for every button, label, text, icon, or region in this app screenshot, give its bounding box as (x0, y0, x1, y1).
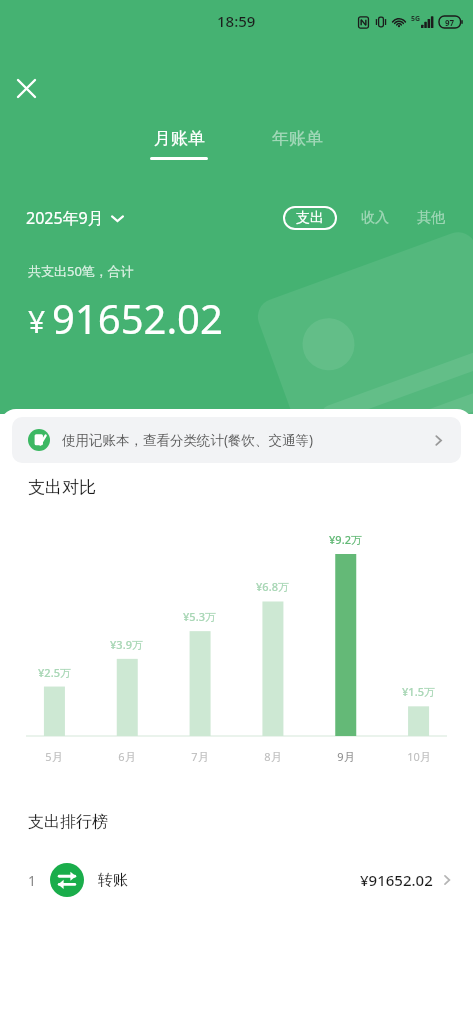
staticText: 支出对比 (28, 477, 96, 498)
staticText: 使用记账本，查看分类统计(餐饮、交通等) (62, 431, 314, 449)
staticText: 10月 (407, 749, 431, 764)
staticText: 共支出50笔，合计 (28, 262, 134, 280)
staticText: 5G (411, 14, 421, 24)
staticText: ¥91652.02 (360, 870, 433, 890)
staticText: 月账单 (154, 128, 205, 149)
staticText: 91652.02 (52, 291, 223, 345)
button[interactable]: 其他 (415, 205, 447, 231)
staticText: ¥ (28, 301, 46, 342)
button[interactable]: 支出 (283, 206, 337, 230)
staticText: 6月 (118, 749, 136, 764)
staticText: 支出 (296, 209, 324, 227)
staticText: ¥1.5万 (402, 684, 435, 699)
button[interactable]: Close (8, 70, 44, 106)
staticText: 5月 (45, 749, 63, 764)
staticText: 2025年9月 (26, 207, 104, 229)
button[interactable]: 使用记账本，查看分类统计(餐饮、交通等) (12, 417, 461, 463)
staticText: 97 (445, 17, 455, 28)
staticText: 转账 (98, 871, 128, 890)
staticText: ¥9.2万 (329, 532, 362, 547)
staticText: 7月 (191, 749, 209, 764)
staticText: ¥5.3万 (183, 609, 216, 624)
staticText: ¥6.8万 (256, 579, 289, 594)
staticText: 其他 (417, 209, 445, 227)
staticText: 支出排行榜 (28, 812, 108, 832)
button[interactable]: 2025年9月 (26, 207, 124, 229)
staticText: 1 (28, 871, 50, 890)
staticText: 8月 (264, 749, 282, 764)
button[interactable]: 1 (0, 852, 473, 908)
staticText: ¥2.5万 (38, 665, 71, 680)
staticText: ¥3.9万 (110, 637, 143, 652)
staticText: 9月 (337, 749, 355, 764)
button[interactable]: 收入 (359, 205, 391, 231)
button[interactable]: 月账单 (136, 126, 222, 162)
staticText: 年账单 (272, 128, 323, 149)
button[interactable]: 年账单 (258, 126, 337, 151)
staticText: 收入 (361, 209, 389, 227)
staticText: 18:59 (217, 11, 256, 31)
